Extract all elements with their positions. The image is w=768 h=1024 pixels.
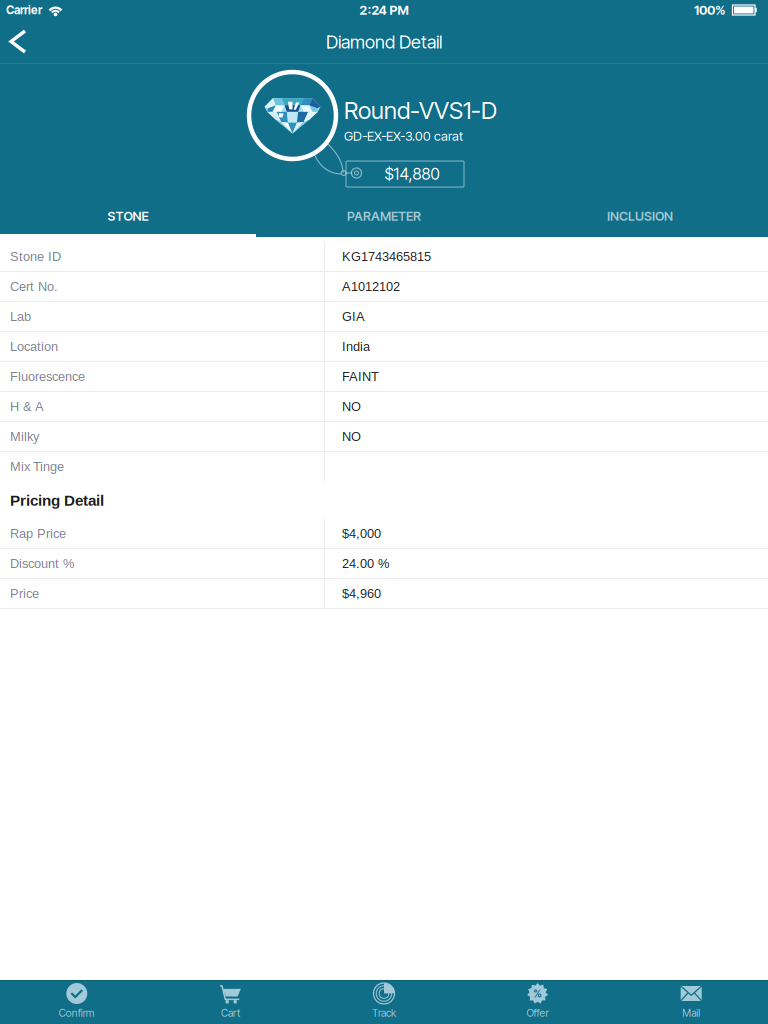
button[interactable]: Track (307, 980, 461, 1024)
staticText: Mail (682, 1007, 700, 1019)
staticText: Round-VVS1-D (344, 96, 497, 125)
button[interactable]: Cart (154, 980, 307, 1024)
staticText: Offer (527, 1007, 549, 1019)
staticText: India (342, 339, 370, 354)
staticText: 100% (694, 2, 726, 18)
staticText: STONE (107, 208, 148, 224)
staticText: GD-EX-EX-3.00 carat (344, 128, 463, 144)
staticText: Diamond Detail (326, 31, 442, 53)
staticText: $4,960 (342, 586, 381, 601)
staticText: $14,880 (384, 164, 439, 184)
staticText: $4,000 (342, 526, 381, 541)
staticText: GIA (342, 309, 365, 324)
staticText: Carrier (6, 3, 42, 17)
button[interactable]: STONE (0, 198, 256, 237)
staticText: Discount % (10, 556, 74, 571)
button[interactable]: % (461, 980, 614, 1024)
staticText: Mix Tinge (10, 459, 64, 474)
staticText: FAINT (342, 369, 379, 384)
button[interactable]: PARAMETER (256, 198, 512, 237)
staticText: Confirm (59, 1007, 95, 1019)
staticText: PARAMETER (347, 208, 421, 224)
button[interactable]: INCLUSION (512, 198, 768, 237)
staticText: NO (342, 399, 361, 414)
staticText: Lab (10, 309, 31, 324)
staticText: Cart (221, 1007, 240, 1019)
staticText: A1012102 (342, 279, 400, 294)
button[interactable]: Mail (614, 980, 768, 1024)
staticText: % (533, 987, 542, 1000)
staticText: NO (342, 429, 361, 444)
button[interactable]: Confirm (0, 980, 154, 1024)
staticText: 2:24 PM (359, 2, 408, 18)
staticText: INCLUSION (607, 208, 673, 224)
staticText: Pricing Detail (10, 492, 104, 509)
staticText: Price (10, 586, 39, 601)
staticText: Rap Price (10, 526, 66, 541)
staticText: Milky (10, 429, 39, 444)
staticText: Track (372, 1007, 396, 1019)
button[interactable]: $14,880 (346, 161, 464, 187)
staticText: H & A (10, 399, 44, 414)
staticText: Fluorescence (10, 369, 85, 384)
button[interactable]: Back (0, 20, 44, 63)
staticText: KG1743465815 (342, 249, 431, 264)
staticText: Cert No. (10, 279, 58, 294)
staticText: Stone ID (10, 249, 61, 264)
staticText: Location (10, 339, 58, 354)
staticText: 24.00 % (342, 556, 389, 571)
